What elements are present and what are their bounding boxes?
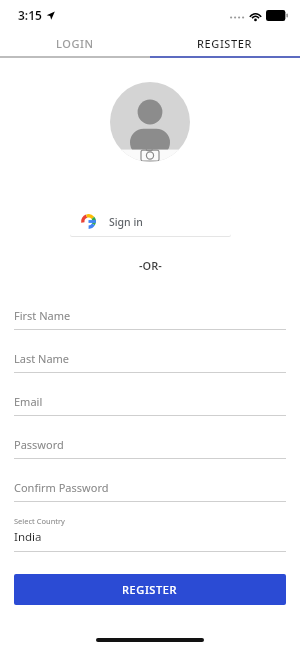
staticText: REGISTER bbox=[197, 36, 253, 51]
button[interactable]: REGISTER bbox=[14, 574, 286, 605]
staticText: 3:15 bbox=[18, 7, 42, 23]
staticText: REGISTER bbox=[122, 582, 178, 597]
button[interactable]: Confirm Password bbox=[14, 473, 286, 516]
button[interactable]: LOGIN bbox=[0, 30, 150, 56]
staticText: Select Country bbox=[14, 516, 65, 526]
staticText: -OR- bbox=[139, 258, 162, 273]
staticText: First Name bbox=[14, 308, 71, 323]
staticText: Sign in bbox=[109, 215, 143, 229]
button[interactable]: Last Name bbox=[14, 344, 286, 387]
staticText: Password bbox=[14, 437, 64, 452]
button[interactable]: Email bbox=[14, 387, 286, 430]
button[interactable]: First Name bbox=[14, 301, 286, 344]
button[interactable]: Password bbox=[14, 430, 286, 473]
button[interactable]: Select Country bbox=[14, 516, 286, 552]
staticText: Email bbox=[14, 394, 43, 409]
staticText: Last Name bbox=[14, 351, 70, 366]
button[interactable]: REGISTER bbox=[150, 30, 300, 56]
staticText: LOGIN bbox=[56, 36, 94, 51]
staticText: India bbox=[14, 529, 42, 545]
staticText: Confirm Password bbox=[14, 480, 109, 495]
button[interactable]: Change profile photo bbox=[110, 82, 190, 162]
button[interactable]: Sign in bbox=[70, 207, 231, 236]
